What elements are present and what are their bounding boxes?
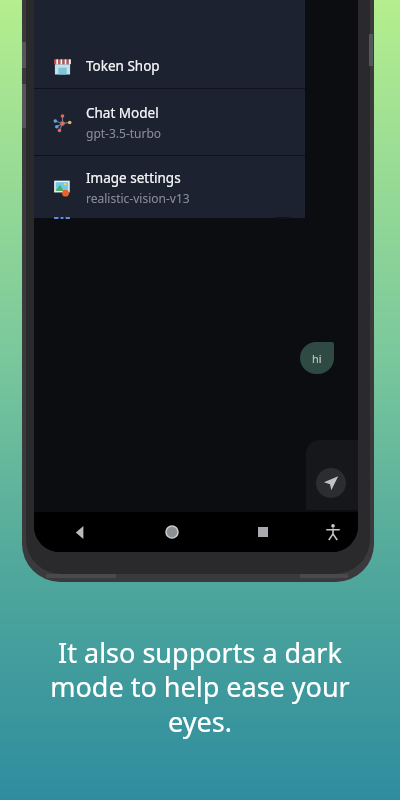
button[interactable]: Recent apps	[217, 527, 308, 537]
button[interactable]: Accessibility	[308, 524, 358, 540]
staticText: Image settings	[86, 169, 181, 187]
staticText: hi	[312, 351, 322, 366]
button[interactable]: Home	[126, 525, 217, 539]
staticText: Chat Model	[86, 104, 159, 122]
button[interactable]: Back	[34, 526, 126, 539]
button[interactable]: Token Shop	[34, 44, 305, 88]
staticText: Token Shop	[86, 57, 160, 75]
button[interactable]: Send	[316, 468, 346, 498]
button[interactable]: Chat Model	[34, 89, 305, 155]
staticText: realistic-vision-v13	[86, 190, 190, 206]
staticText: It also supports a dark mode to help eas…	[22, 634, 378, 740]
button[interactable]: Image settings	[34, 156, 305, 218]
staticText: gpt-3.5-turbo	[86, 125, 162, 141]
